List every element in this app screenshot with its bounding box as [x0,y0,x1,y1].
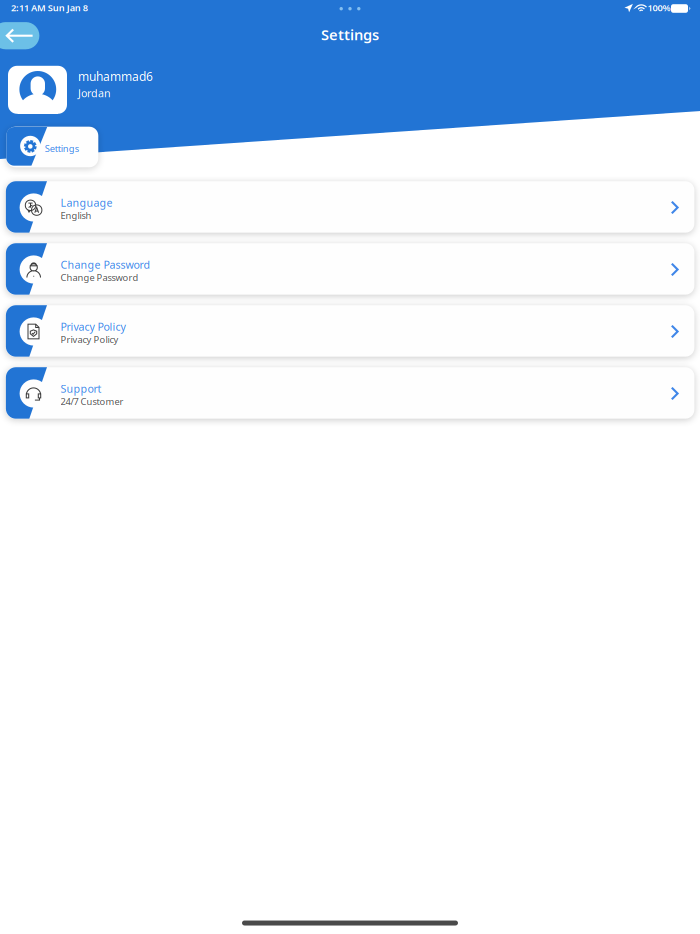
staticText: English [61,209,92,221]
staticText: Change Password [61,271,139,283]
staticText: 100% [648,1,671,14]
staticText: 2:11 AM [11,1,46,14]
staticText: Jordan [78,86,111,100]
staticText: Change Password [61,258,151,272]
staticText: Settings [45,142,79,155]
staticText: muhammad6 [78,68,153,84]
button[interactable]: Back [0,0,700,934]
button[interactable]: Language [0,0,700,934]
staticText: Privacy Policy [61,320,126,334]
staticText: Settings [321,25,379,44]
button[interactable]: Settings [0,0,700,934]
staticText: Sun Jan 8 [48,1,88,14]
button[interactable]: Support [0,0,700,934]
button[interactable]: Change Password [0,0,700,934]
staticText: Support [61,382,102,396]
button[interactable]: Privacy Policy [0,0,700,934]
staticText: Privacy Policy [61,333,119,345]
staticText: Language [61,196,113,210]
staticText: 24/7 Customer [61,395,124,407]
